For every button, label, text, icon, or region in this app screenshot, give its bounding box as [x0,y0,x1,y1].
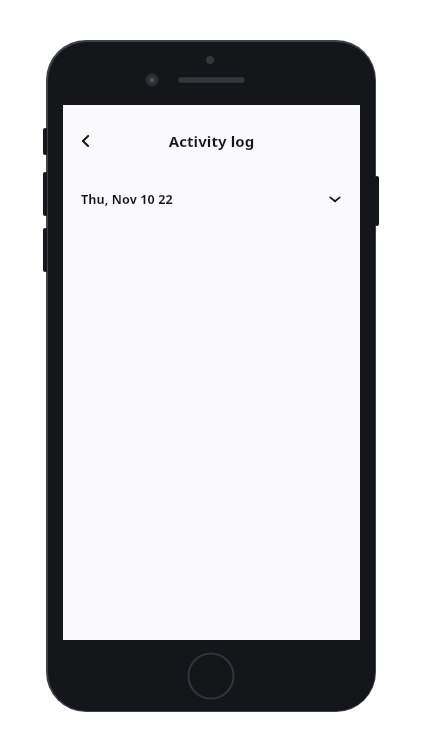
other: Home [187,652,235,700]
staticText: Activity log [63,131,360,151]
button[interactable]: Thu, Nov 10 22 [63,179,360,219]
button[interactable]: Back [69,124,103,158]
staticText: Thu, Nov 10 22 [81,191,173,208]
